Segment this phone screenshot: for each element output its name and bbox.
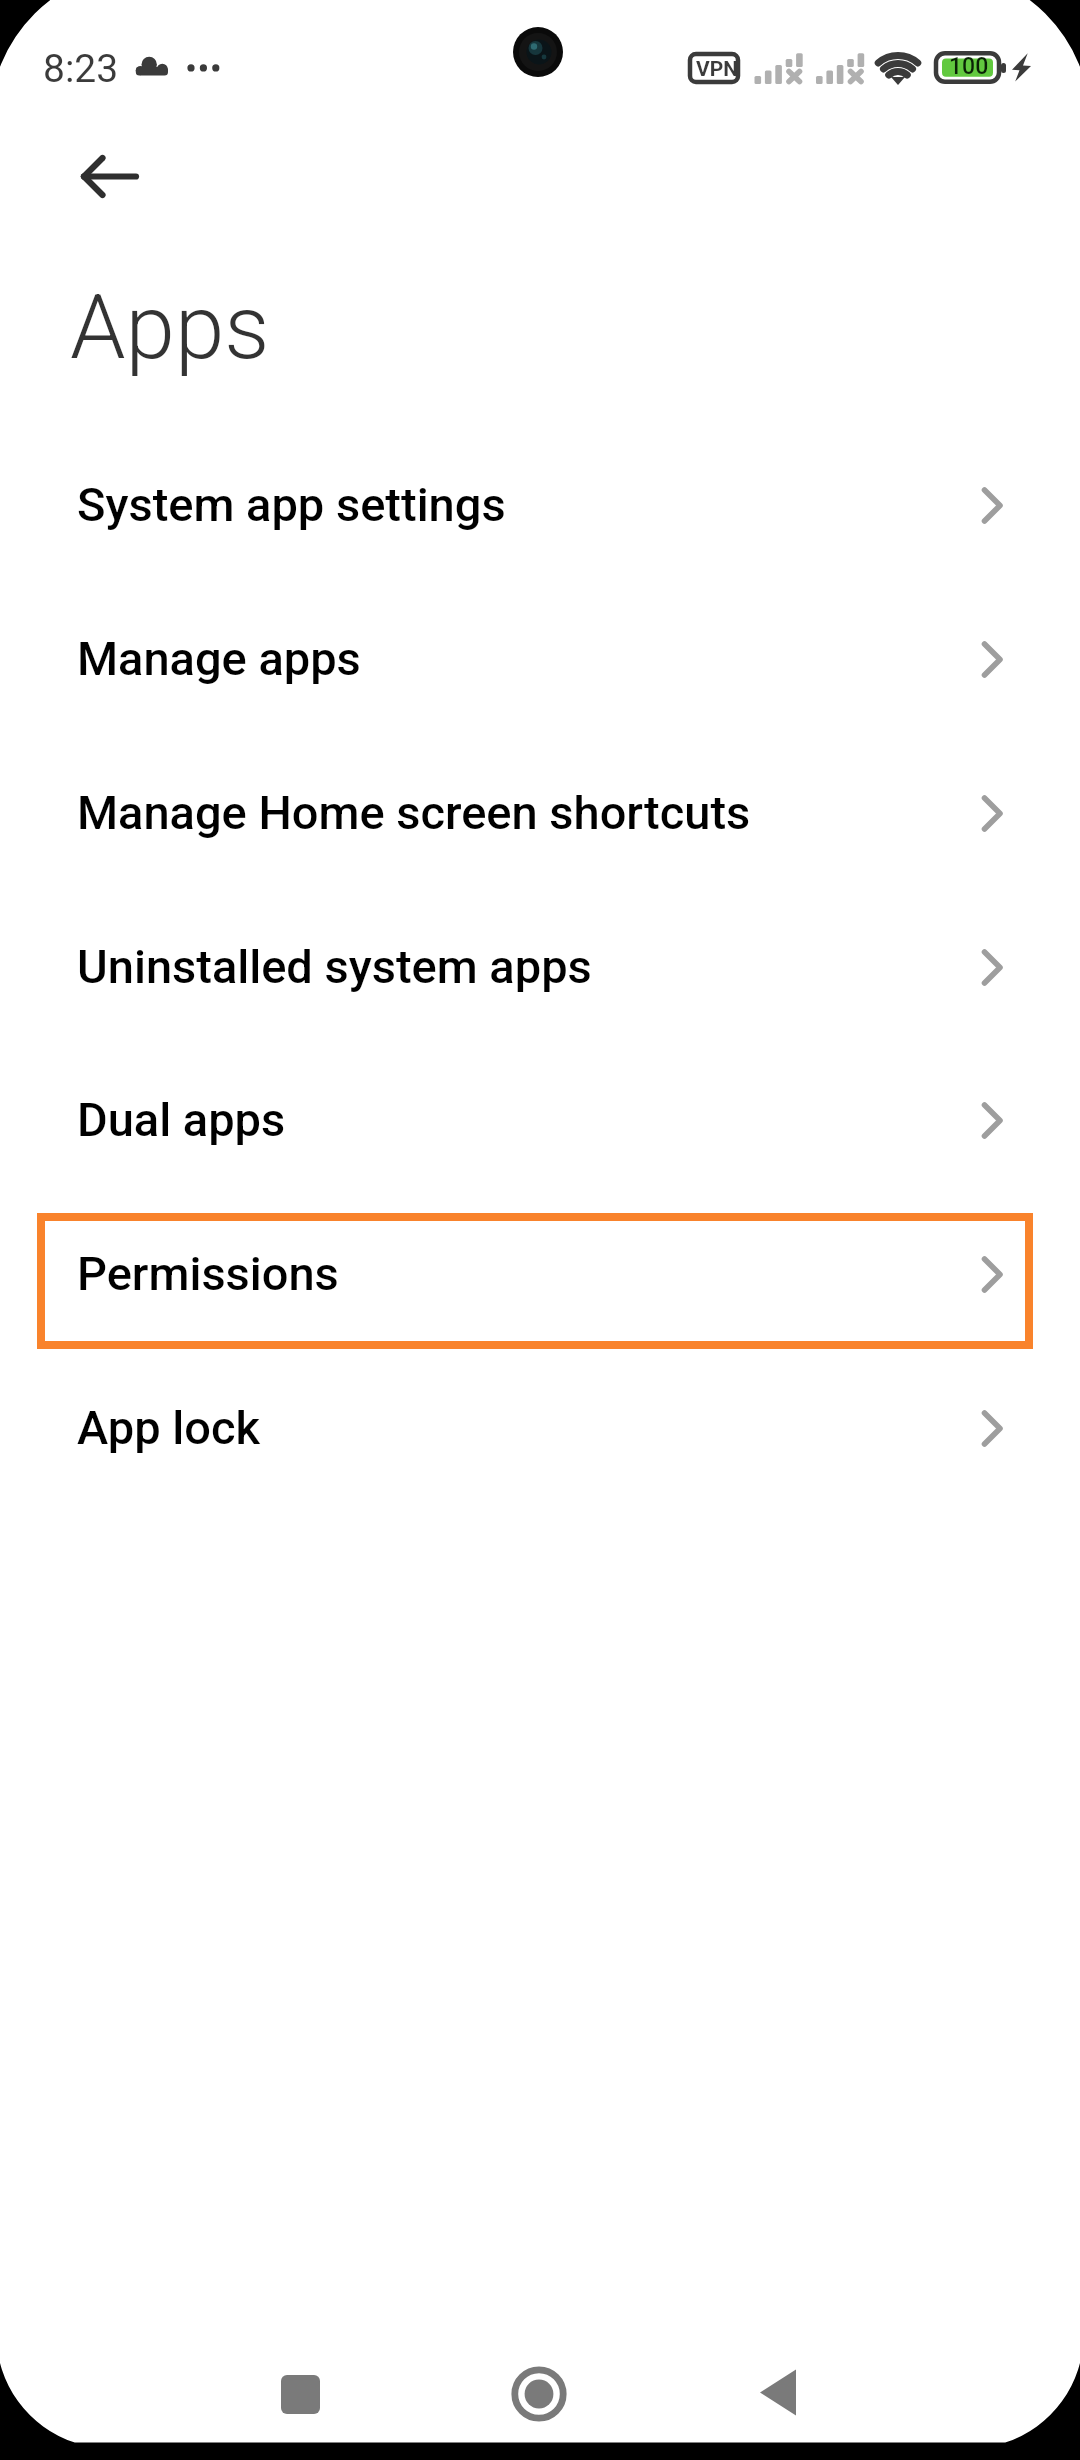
button[interactable]: App lock — [0, 1350, 1080, 1504]
button[interactable]: Dual apps — [0, 1042, 1080, 1196]
button[interactable]: Manage Home screen shortcuts — [0, 735, 1080, 889]
button[interactable]: Manage apps — [0, 581, 1080, 735]
staticText: 100 — [949, 53, 989, 80]
button[interactable]: Home — [479, 2334, 599, 2454]
button[interactable]: Back — [718, 2334, 838, 2454]
staticText: 8:23 — [43, 46, 119, 92]
button[interactable]: Uninstalled system apps — [0, 889, 1080, 1043]
button[interactable]: Permissions — [0, 1196, 1080, 1350]
staticText: VPN — [696, 57, 739, 82]
staticText: Dual apps — [77, 1092, 286, 1147]
staticText: Manage Home screen shortcuts — [77, 785, 751, 840]
staticText: Apps — [70, 275, 270, 379]
staticText: Permissions — [77, 1246, 339, 1301]
button[interactable]: Recents — [240, 2334, 360, 2454]
staticText: System app settings — [77, 477, 506, 532]
staticText: App lock — [77, 1400, 260, 1455]
staticText: Manage apps — [77, 631, 361, 686]
staticText: Uninstalled system apps — [77, 939, 592, 994]
button[interactable]: Back — [34, 125, 138, 229]
button[interactable]: System app settings — [0, 427, 1080, 581]
